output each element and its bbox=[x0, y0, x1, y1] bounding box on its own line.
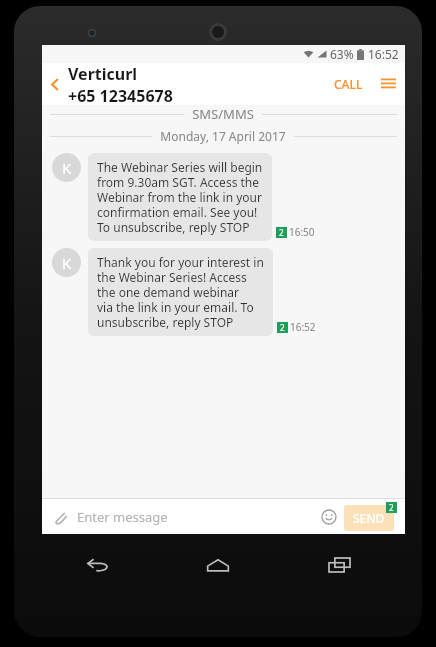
button[interactable]: Back bbox=[42, 63, 68, 105]
staticText: Enter message bbox=[77, 508, 168, 526]
button[interactable]: Recent apps bbox=[316, 542, 362, 588]
button[interactable]: The Webinar Series will begin from 9.30a… bbox=[88, 153, 272, 241]
button[interactable]: Menu bbox=[371, 63, 405, 105]
staticText: 2 bbox=[279, 227, 284, 238]
button[interactable]: Emoji bbox=[318, 506, 340, 528]
staticText: SMS/MMS bbox=[192, 105, 254, 123]
staticText: 16:52 bbox=[290, 320, 316, 334]
button[interactable]: Thank you for your interest in the Webin… bbox=[88, 248, 273, 336]
staticText: The Webinar Series will begin from 9.30a… bbox=[97, 159, 263, 235]
button[interactable]: Attach bbox=[50, 507, 70, 527]
button[interactable]: Verticurl bbox=[68, 63, 326, 105]
button[interactable]: SEND bbox=[344, 505, 394, 531]
staticText: 2 bbox=[280, 322, 285, 333]
staticText: CALL bbox=[334, 76, 363, 92]
staticText: K bbox=[62, 158, 72, 178]
button[interactable]: CALL bbox=[326, 70, 371, 98]
staticText: 16:50 bbox=[289, 225, 315, 239]
staticText: 16:52 bbox=[368, 46, 399, 62]
button[interactable]: Back bbox=[75, 542, 121, 588]
staticText: K bbox=[62, 253, 72, 273]
staticText: Verticurl bbox=[68, 63, 138, 85]
staticText: Thank you for your interest in the Webin… bbox=[97, 254, 264, 330]
button[interactable]: Home bbox=[195, 542, 241, 588]
staticText: Monday, 17 April 2017 bbox=[160, 128, 286, 144]
staticText: SEND bbox=[353, 510, 385, 526]
staticText: 63% bbox=[330, 46, 354, 62]
staticText: 2 bbox=[389, 502, 394, 513]
staticText: +65 12345678 bbox=[68, 85, 173, 105]
button[interactable]: Enter message bbox=[77, 508, 318, 526]
